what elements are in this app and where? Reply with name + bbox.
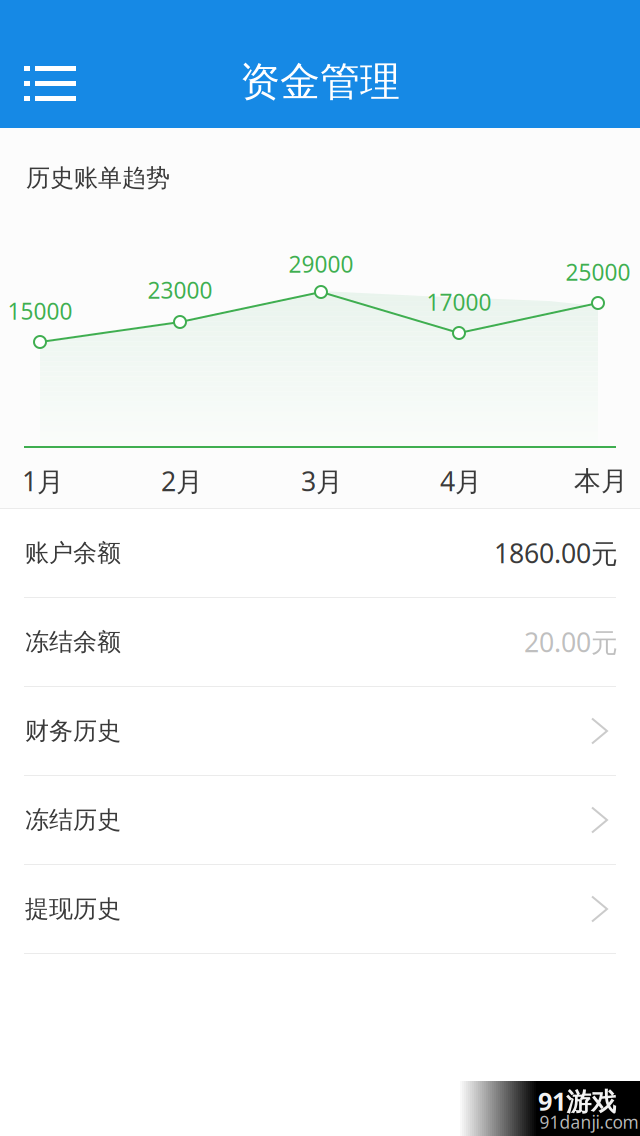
staticText: 23000 — [147, 275, 212, 305]
staticText: 15000 — [7, 296, 72, 326]
button[interactable]: 账户余额 — [0, 509, 640, 598]
staticText: 资金管理 — [240, 57, 400, 106]
button[interactable]: 提现历史 — [0, 865, 640, 954]
staticText: 1月 — [22, 463, 64, 499]
staticText: 91游戏 — [538, 1084, 616, 1118]
staticText: 账户余额 — [25, 538, 121, 568]
button[interactable]: 冻结历史 — [0, 776, 640, 865]
staticText: 17000 — [426, 287, 491, 317]
staticText: 历史账单趋势 — [26, 163, 170, 193]
staticText: 冻结余额 — [25, 627, 121, 657]
staticText: 91danji.com — [539, 1110, 638, 1133]
staticText: 25000 — [565, 257, 630, 287]
staticText: 本月 — [574, 465, 628, 497]
staticText: 1860.00元 — [494, 535, 618, 571]
staticText: 2月 — [161, 463, 203, 499]
button[interactable]: 财务历史 — [0, 687, 640, 776]
staticText: 20.00元 — [524, 624, 618, 660]
button[interactable]: Menu — [0, 0, 100, 128]
button[interactable]: 冻结余额 — [0, 598, 640, 687]
staticText: 提现历史 — [25, 894, 121, 924]
staticText: 29000 — [288, 249, 353, 279]
staticText: 冻结历史 — [25, 805, 121, 835]
staticText: 3月 — [301, 463, 343, 499]
staticText: 4月 — [440, 463, 482, 499]
staticText: 财务历史 — [25, 716, 121, 746]
